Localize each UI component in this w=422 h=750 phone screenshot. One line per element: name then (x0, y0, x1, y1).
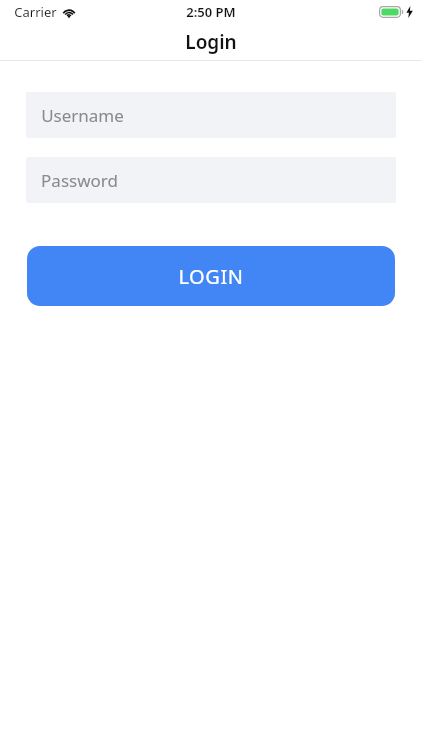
staticText: 2:50 PM (186, 3, 236, 21)
staticText: Username (41, 104, 124, 127)
staticText: LOGIN (178, 263, 244, 290)
staticText: Login (185, 29, 237, 55)
staticText: Password (41, 169, 118, 192)
button[interactable]: Username (26, 92, 396, 138)
button[interactable]: Password (26, 157, 396, 203)
button[interactable]: LOGIN (27, 246, 395, 306)
staticText: Carrier (14, 3, 57, 21)
